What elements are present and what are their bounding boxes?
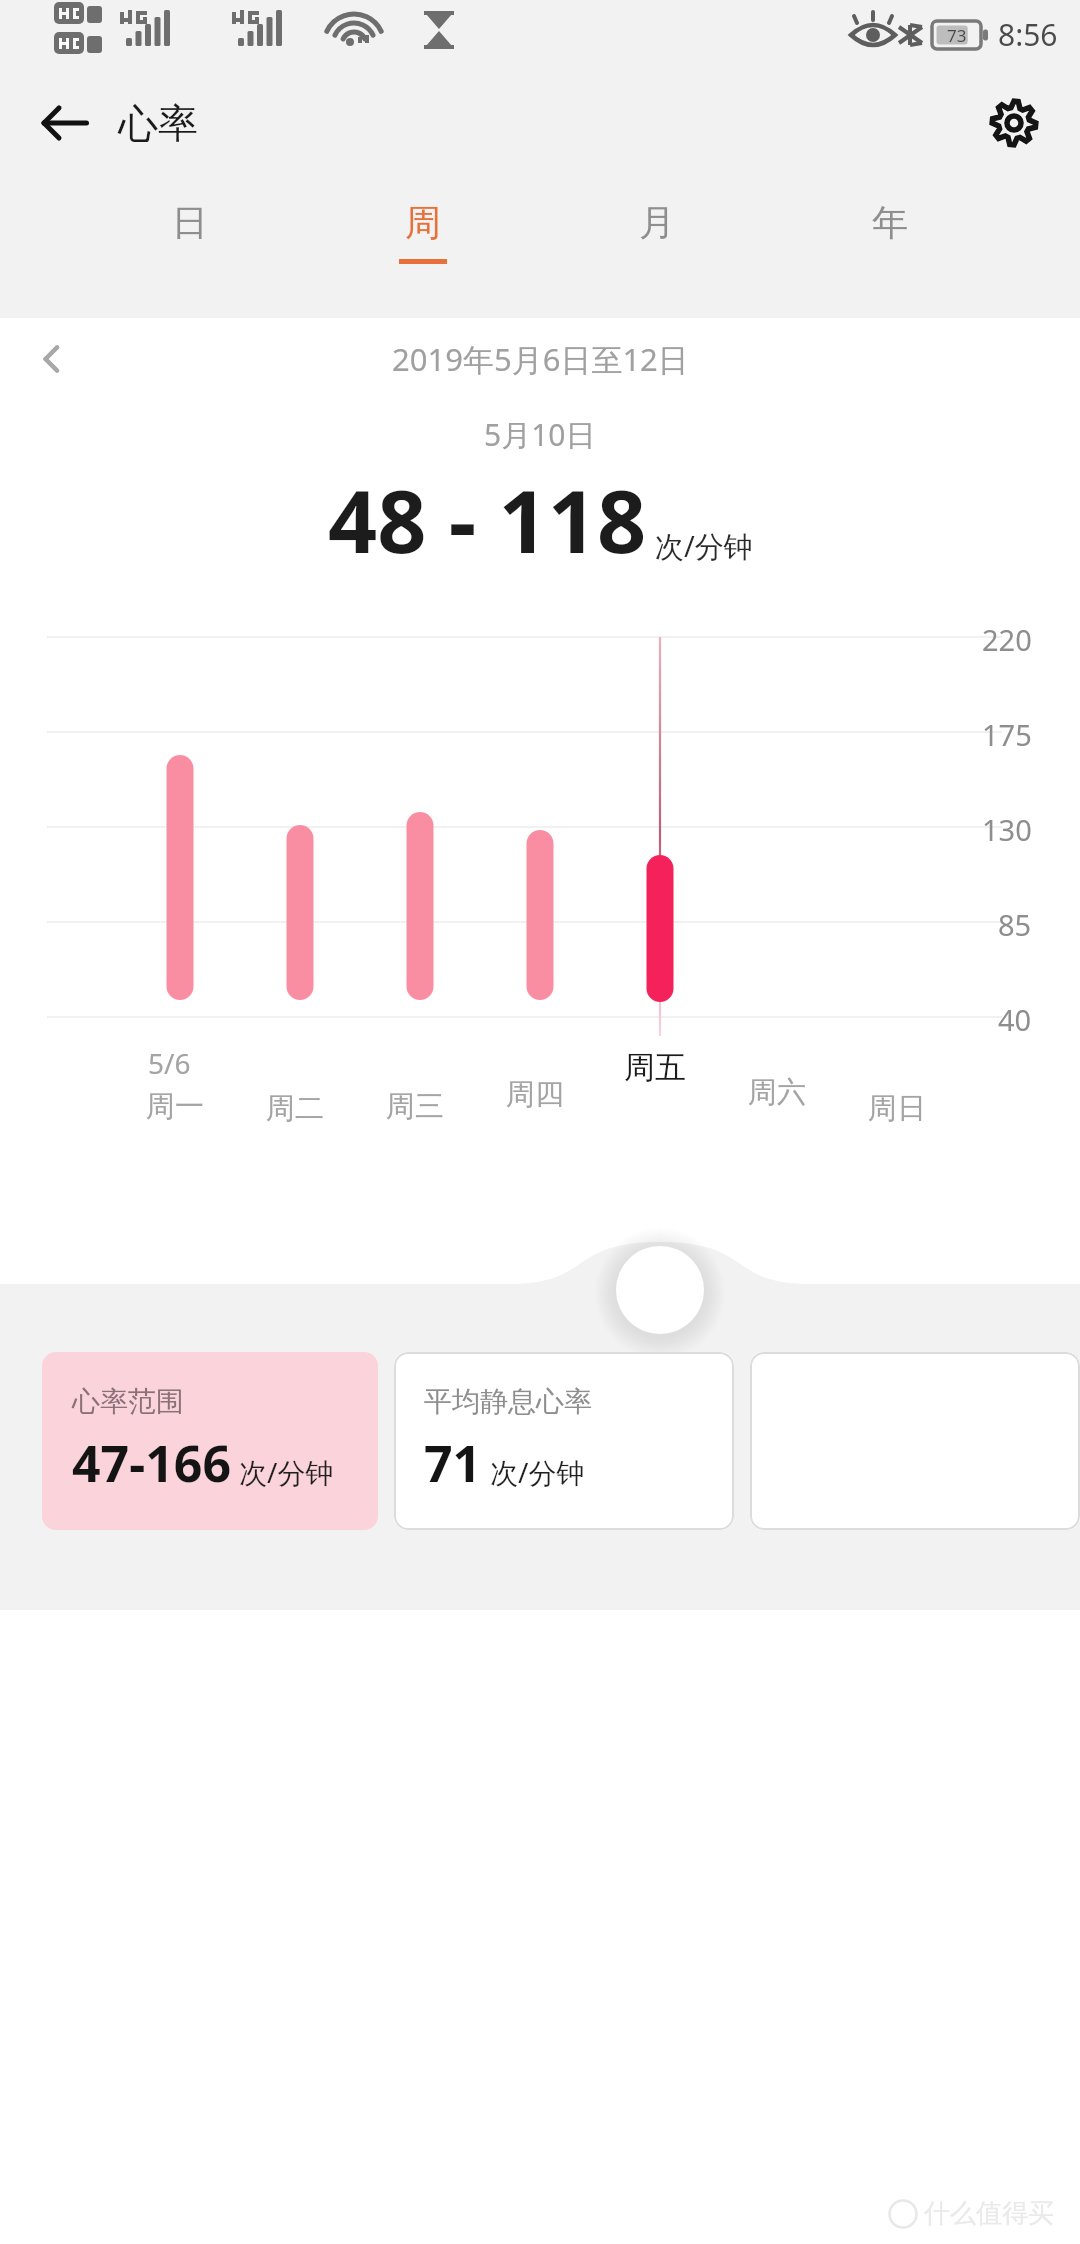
staticText: 周二 <box>266 1090 324 1127</box>
button[interactable]: 周日 <box>868 1090 926 1127</box>
staticText: 47-166 <box>72 1429 231 1497</box>
staticText: 5月10日 <box>484 414 596 455</box>
staticText: 40 <box>998 1000 1032 1039</box>
button[interactable]: Back <box>30 89 98 157</box>
staticText: 年 <box>872 200 908 245</box>
staticText: 周五 <box>624 1048 686 1087</box>
staticText: 什么值得买 <box>924 2197 1054 2230</box>
staticText: 心率 <box>118 98 198 148</box>
button[interactable]: Previous week <box>22 328 84 390</box>
button[interactable]: 日 <box>130 178 250 259</box>
button[interactable]: 周三 <box>386 1088 444 1125</box>
button[interactable]: 周二 <box>266 1090 324 1127</box>
button[interactable]: 心率范围 <box>42 1352 378 1530</box>
staticText: 周四 <box>506 1076 564 1113</box>
staticText: 平均静息心率 <box>424 1384 592 1419</box>
staticText: 次/分钟 <box>655 526 753 566</box>
staticText: 130 <box>982 810 1032 849</box>
staticText: 5/6 <box>148 1044 191 1082</box>
staticText: 175 <box>982 715 1032 754</box>
staticText: 次/分钟 <box>239 1453 334 1491</box>
button[interactable]: 周 <box>363 178 483 264</box>
staticText: 8:56 <box>998 14 1058 55</box>
button[interactable]: 周一 <box>146 1088 204 1125</box>
staticText: 71 <box>424 1429 482 1497</box>
staticText: 日 <box>172 200 208 245</box>
staticText: 220 <box>982 620 1032 659</box>
button[interactable]: 年 <box>830 178 950 259</box>
staticText: 月 <box>639 200 675 245</box>
staticText: 周六 <box>748 1074 806 1111</box>
button[interactable]: 平均静息心率 <box>394 1352 734 1530</box>
button[interactable]: Settings <box>976 85 1052 161</box>
staticText: 周三 <box>386 1088 444 1125</box>
staticText: 48 - 118 <box>328 461 647 578</box>
staticText: 周 <box>405 200 441 245</box>
staticText: 2019年5月6日至12日 <box>392 338 689 380</box>
staticText: 73 <box>947 24 967 47</box>
staticText: 周日 <box>868 1090 926 1127</box>
staticText: 次/分钟 <box>490 1453 585 1491</box>
staticText: 心率范围 <box>72 1384 184 1419</box>
button[interactable]: 周四 <box>506 1076 564 1113</box>
button[interactable]: 周五 <box>624 1048 686 1087</box>
button[interactable]: 周六 <box>748 1074 806 1111</box>
staticText: 85 <box>998 905 1032 944</box>
button[interactable]: 月 <box>597 178 717 259</box>
button[interactable] <box>750 1352 1080 1530</box>
staticText: 周一 <box>146 1088 204 1125</box>
